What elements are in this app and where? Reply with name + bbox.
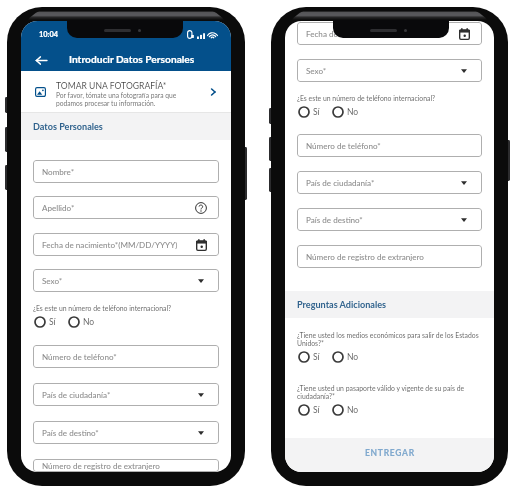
button[interactable]: Sí — [297, 403, 321, 417]
staticText: País de ciudadanía* — [42, 390, 195, 400]
button[interactable]: ENTREGAR — [285, 438, 494, 472]
button[interactable]: Fecha de nacimiento*(MM/DD/YYYY) — [33, 233, 219, 256]
staticText: Sí — [313, 352, 320, 362]
button[interactable]: No — [67, 315, 96, 329]
staticText: País de destino* — [306, 215, 458, 225]
staticText: País de ciudadanía* — [306, 178, 458, 188]
button[interactable]: Sí — [33, 315, 57, 329]
button[interactable]: Sexo* — [297, 59, 482, 82]
button[interactable]: Apellido* — [33, 196, 219, 219]
button[interactable]: País de ciudadanía* — [33, 383, 219, 406]
button[interactable]: No — [331, 105, 360, 119]
staticText: 10:04 — [39, 30, 59, 39]
staticText: Introducir Datos Personales — [69, 53, 195, 65]
staticText: Número de teléfono* — [42, 352, 195, 362]
button[interactable]: País de destino* — [297, 208, 482, 231]
staticText: Preguntas Adicionales — [297, 299, 387, 310]
button[interactable]: Número de teléfono* — [33, 345, 219, 368]
staticText: Datos Personales — [33, 121, 103, 132]
staticText: Sí — [49, 317, 56, 327]
staticText: Número de registro de extranjero — [42, 461, 195, 471]
button[interactable]: TOMAR UNA FOTOGRAFÍA* — [21, 71, 231, 112]
button[interactable]: Número de registro de extranjero — [297, 245, 482, 268]
button[interactable]: No — [331, 350, 360, 364]
staticText: No — [83, 317, 95, 327]
staticText: No — [347, 405, 359, 415]
staticText: Sí — [313, 107, 320, 117]
staticText: ¿Tiene usted los medios económicos para … — [297, 331, 482, 347]
button[interactable]: Número de registro de extranjero — [33, 459, 219, 472]
button[interactable]: Fecha de nacimiento*(MM/DD/YYYY) — [297, 22, 482, 45]
staticText: ¿Tiene usted un pasaporte válido y vigen… — [297, 384, 482, 400]
staticText: ENTREGAR — [365, 448, 415, 458]
staticText: Apellido* — [42, 203, 195, 213]
staticText: Sexo* — [42, 276, 195, 286]
button[interactable]: País de ciudadanía* — [297, 171, 482, 194]
staticText: País de destino* — [42, 428, 195, 438]
staticText: No — [347, 107, 359, 117]
staticText: Número de registro de extranjero — [306, 252, 458, 262]
button[interactable]: País de destino* — [33, 421, 219, 444]
staticText: TOMAR UNA FOTOGRAFÍA* — [56, 81, 167, 91]
button[interactable]: Back — [33, 52, 49, 68]
staticText: Nombre* — [42, 167, 195, 177]
staticText: ¿Es este un número de teléfono internaci… — [297, 94, 436, 102]
button[interactable]: Nombre* — [33, 160, 219, 183]
button[interactable]: Sexo* — [33, 269, 219, 292]
staticText: Fecha de nacimiento*(MM/DD/YYYY) — [306, 29, 458, 39]
button[interactable]: Sí — [297, 350, 321, 364]
button[interactable]: No — [331, 403, 360, 417]
staticText: ¿Es este un número de teléfono internaci… — [33, 304, 172, 312]
button[interactable]: Sí — [297, 105, 321, 119]
staticText: Sexo* — [306, 66, 458, 76]
staticText: No — [347, 352, 359, 362]
button[interactable]: Número de teléfono* — [297, 134, 482, 157]
staticText: Por favor, tómate una fotografía para qu… — [56, 91, 177, 107]
staticText: Número de teléfono* — [306, 141, 458, 151]
staticText: Fecha de nacimiento*(MM/DD/YYYY) — [42, 240, 195, 250]
staticText: Sí — [313, 405, 320, 415]
